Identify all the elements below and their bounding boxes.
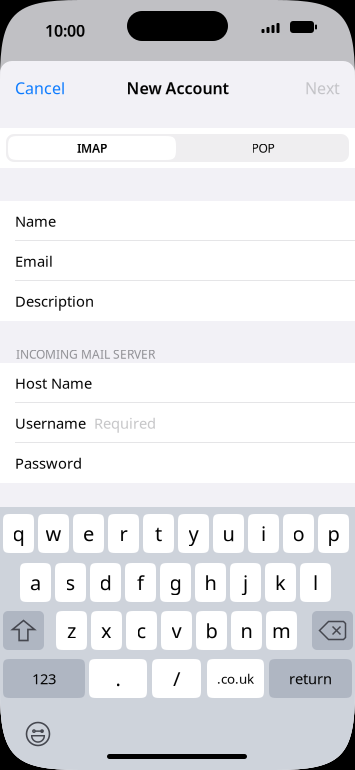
- staticText: e: [83, 520, 94, 547]
- button[interactable]: l: [300, 563, 331, 602]
- staticText: x: [101, 617, 112, 644]
- staticText: Host Name: [15, 373, 92, 393]
- button[interactable]: h: [195, 563, 226, 602]
- button[interactable]: e: [73, 514, 104, 553]
- staticText: IMAP: [77, 140, 107, 156]
- staticText: Username: [15, 413, 86, 433]
- button[interactable]: Username: [0, 403, 355, 443]
- button[interactable]: Emoji keyboard: [26, 722, 50, 746]
- staticText: .co.uk: [217, 670, 254, 687]
- button[interactable]: Host Name: [0, 363, 355, 403]
- staticText: Cancel: [15, 77, 65, 99]
- staticText: POP: [251, 140, 274, 156]
- staticText: b: [205, 617, 217, 644]
- button[interactable]: Shift: [3, 611, 44, 650]
- button[interactable]: q: [3, 514, 34, 553]
- button[interactable]: Description: [0, 281, 355, 321]
- staticText: w: [45, 520, 61, 547]
- button[interactable]: Next: [270, 66, 355, 110]
- button[interactable]: Email: [0, 241, 355, 281]
- button[interactable]: f: [125, 563, 156, 602]
- staticText: New Account: [126, 77, 228, 99]
- staticText: m: [272, 617, 291, 644]
- staticText: l: [313, 569, 318, 596]
- button[interactable]: o: [283, 514, 314, 553]
- button[interactable]: w: [38, 514, 69, 553]
- staticText: o: [292, 520, 304, 547]
- button[interactable]: y: [178, 514, 209, 553]
- button[interactable]: s: [55, 563, 86, 602]
- staticText: /: [173, 665, 180, 692]
- staticText: 10:00: [45, 20, 85, 41]
- staticText: INCOMING MAIL SERVER: [16, 346, 155, 362]
- button[interactable]: n: [231, 611, 262, 650]
- staticText: h: [204, 569, 216, 596]
- button[interactable]: x: [91, 611, 122, 650]
- button[interactable]: return: [269, 659, 352, 698]
- button[interactable]: 123: [3, 659, 85, 698]
- button[interactable]: IMAP: [8, 136, 176, 160]
- staticText: v: [171, 617, 181, 644]
- button[interactable]: .co.uk: [207, 659, 264, 698]
- staticText: k: [275, 569, 286, 596]
- button[interactable]: /: [152, 659, 201, 698]
- staticText: c: [136, 617, 146, 644]
- staticText: return: [289, 669, 332, 688]
- staticText: Name: [15, 211, 56, 231]
- staticText: g: [169, 569, 181, 596]
- button[interactable]: b: [196, 611, 227, 650]
- button[interactable]: i: [248, 514, 279, 553]
- staticText: s: [65, 569, 75, 596]
- staticText: Next: [305, 77, 340, 99]
- staticText: 123: [32, 669, 56, 688]
- staticText: p: [327, 520, 339, 547]
- staticText: j: [243, 569, 248, 596]
- button[interactable]: Delete: [312, 611, 353, 650]
- staticText: Required: [86, 413, 156, 433]
- button[interactable]: c: [126, 611, 157, 650]
- staticText: f: [137, 569, 144, 596]
- button[interactable]: Name: [0, 201, 355, 241]
- staticText: d: [99, 569, 111, 596]
- button[interactable]: k: [265, 563, 296, 602]
- staticText: Password: [15, 453, 82, 473]
- button[interactable]: r: [108, 514, 139, 553]
- button[interactable]: POP: [179, 136, 347, 160]
- button[interactable]: g: [160, 563, 191, 602]
- button[interactable]: u: [213, 514, 244, 553]
- button[interactable]: j: [230, 563, 261, 602]
- staticText: n: [240, 617, 252, 644]
- button[interactable]: Password: [0, 443, 355, 483]
- staticText: .: [115, 665, 120, 692]
- staticText: q: [12, 520, 24, 547]
- staticText: t: [155, 520, 162, 547]
- staticText: i: [261, 520, 266, 547]
- staticText: u: [222, 520, 234, 547]
- button[interactable]: v: [161, 611, 192, 650]
- staticText: Email: [15, 251, 53, 271]
- button[interactable]: Cancel: [0, 66, 90, 110]
- button[interactable]: m: [266, 611, 297, 650]
- staticText: Description: [15, 291, 94, 311]
- staticText: r: [119, 520, 127, 547]
- button[interactable]: a: [20, 563, 51, 602]
- button[interactable]: .: [89, 659, 147, 698]
- staticText: y: [188, 520, 198, 547]
- button[interactable]: p: [318, 514, 349, 553]
- staticText: z: [67, 617, 76, 644]
- button[interactable]: t: [143, 514, 174, 553]
- staticText: a: [30, 569, 41, 596]
- button[interactable]: z: [56, 611, 87, 650]
- button[interactable]: d: [90, 563, 121, 602]
